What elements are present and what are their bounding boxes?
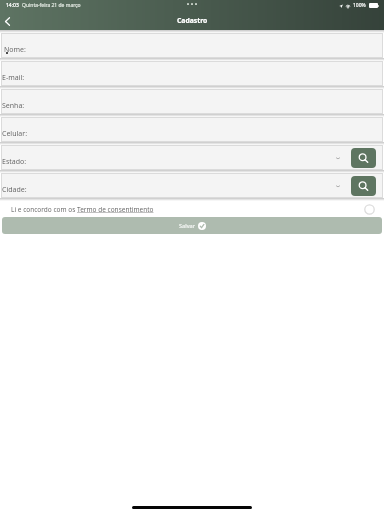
button[interactable]: Cidade: [1, 173, 383, 198]
button[interactable]: Celular: [1, 117, 383, 142]
staticText: Cidade: [2, 185, 27, 195]
staticText: Celular: [2, 129, 28, 139]
button[interactable]: Buscar [351, 176, 376, 196]
staticText: 14:03 [6, 2, 19, 9]
button[interactable]: Estado: [1, 145, 383, 170]
staticText: Estado: [2, 157, 27, 167]
button[interactable]: Nome: [1, 33, 383, 58]
staticText: Salvar [179, 222, 195, 230]
button[interactable]: Aceitar termo [361, 201, 377, 217]
staticText: Li e concordo com os [11, 205, 77, 214]
button[interactable]: Salvar [2, 217, 382, 234]
staticText: E-mail: [2, 73, 25, 83]
staticText: Cadastro [177, 16, 208, 25]
button[interactable]: E-mail: [1, 61, 383, 86]
button[interactable]: Termo de consentimento [77, 205, 154, 214]
button[interactable]: Senha: [1, 89, 383, 114]
staticText: Nome: [4, 45, 26, 55]
staticText: Quinta-feira 21 de março [22, 2, 81, 9]
button[interactable]: Voltar [0, 14, 14, 28]
button[interactable]: Buscar [351, 148, 376, 168]
staticText: Senha: [2, 101, 25, 111]
staticText: 100% [353, 2, 366, 9]
